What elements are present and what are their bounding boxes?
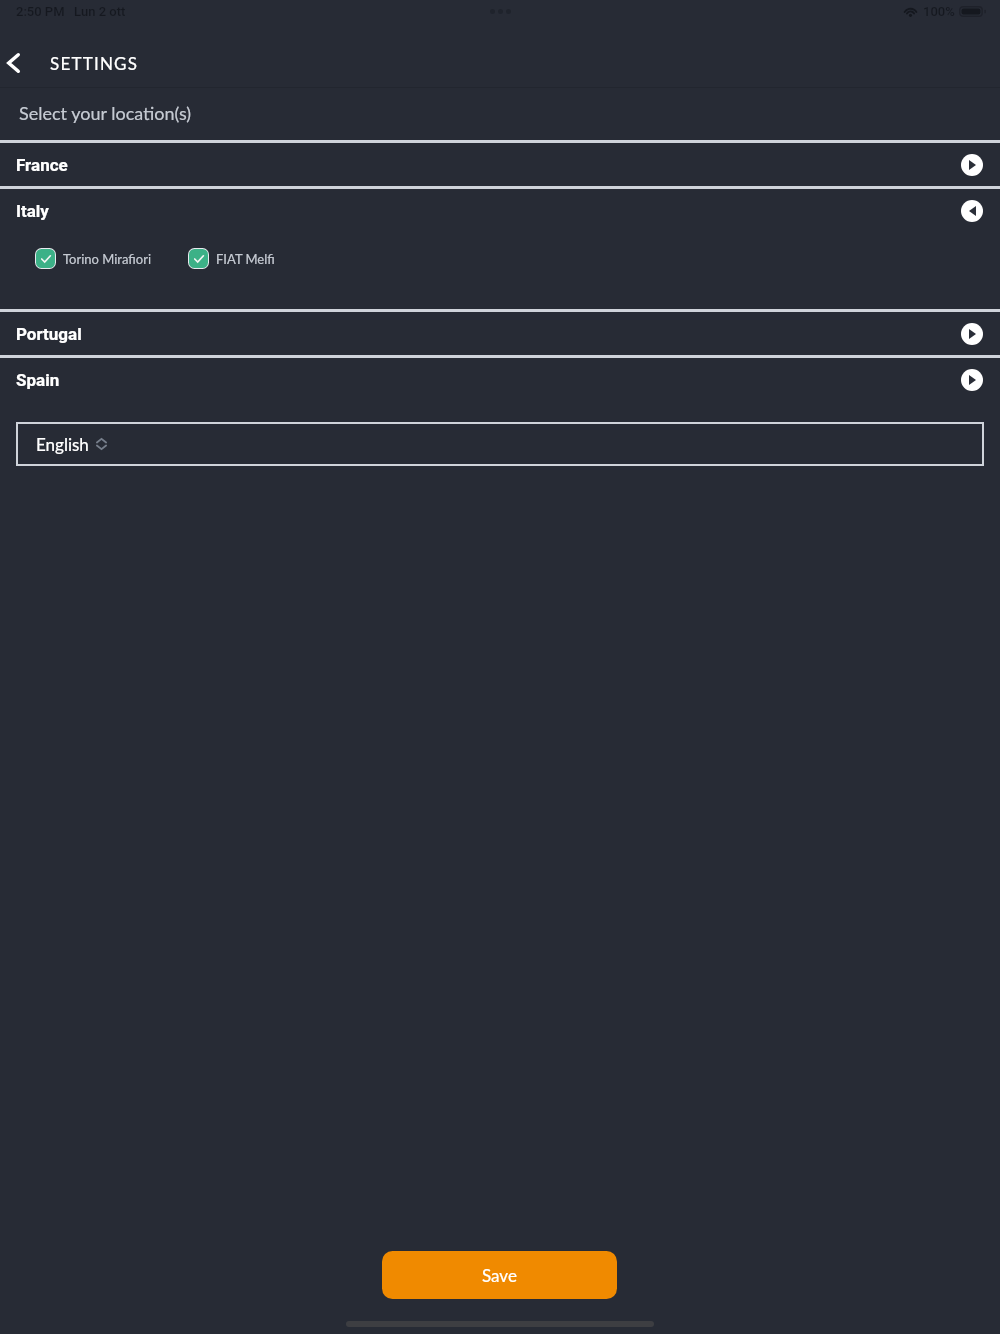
button[interactable]: France <box>0 143 1000 186</box>
staticText: FIAT Melfi <box>216 251 275 267</box>
button[interactable]: Back <box>0 42 34 84</box>
staticText: English <box>36 434 89 454</box>
staticText: SETTINGS <box>50 53 139 73</box>
staticText: Lun 2 ott <box>74 4 126 19</box>
staticText: 100% <box>923 4 955 19</box>
button[interactable]: Save <box>382 1251 617 1299</box>
button[interactable]: Portugal <box>0 312 1000 355</box>
button[interactable]: Torino Mirafiori <box>35 248 152 269</box>
staticText: France <box>16 155 68 175</box>
button[interactable]: Italy <box>0 189 1000 232</box>
button[interactable]: Spain <box>0 358 1000 401</box>
button[interactable]: FIAT Melfi <box>188 248 275 269</box>
staticText: Save <box>482 1265 517 1285</box>
staticText: Italy <box>16 201 49 221</box>
staticText: 2:50 PM <box>16 4 65 19</box>
staticText: Torino Mirafiori <box>63 251 152 267</box>
staticText: Select your location(s) <box>19 102 192 124</box>
staticText: Spain <box>16 370 60 390</box>
button[interactable]: English <box>16 422 984 466</box>
staticText: Portugal <box>16 324 82 344</box>
